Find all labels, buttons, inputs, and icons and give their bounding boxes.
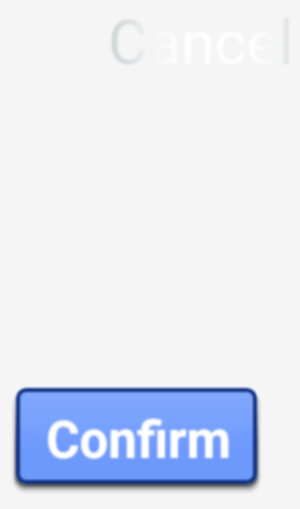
staticText: Confirm	[46, 411, 231, 471]
button[interactable]: Cancel	[108, 5, 296, 79]
button[interactable]: Confirm	[16, 388, 257, 484]
staticText: Cancel	[108, 7, 294, 78]
